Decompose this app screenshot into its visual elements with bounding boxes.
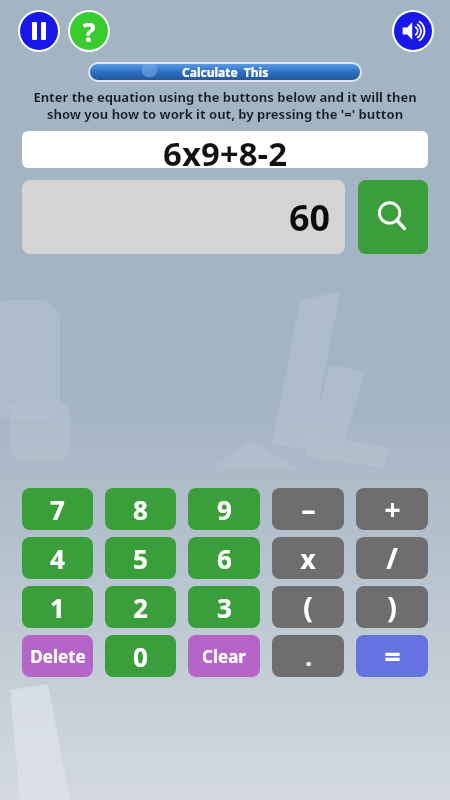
staticText: = (384, 637, 401, 675)
button[interactable]: 0 (105, 635, 176, 677)
button[interactable]: Sound (394, 12, 432, 50)
button[interactable]: 1 (22, 586, 93, 628)
staticText: + (384, 490, 401, 528)
button[interactable]: Delete (22, 635, 93, 677)
button[interactable]: ) (356, 586, 428, 628)
staticText: ) (387, 588, 397, 626)
button[interactable]: Show working (358, 180, 428, 254)
staticText: 7 (50, 492, 65, 527)
button[interactable]: Calculate This (90, 64, 360, 80)
button[interactable]: ( (272, 586, 344, 628)
button[interactable]: – (272, 488, 344, 530)
button[interactable]: 9 (188, 488, 260, 530)
staticText: / (386, 539, 398, 577)
staticText: 2 (133, 590, 148, 625)
staticText: 3 (217, 590, 232, 625)
button[interactable]: + (356, 488, 428, 530)
button[interactable]: 5 (105, 537, 176, 579)
staticText: . (305, 640, 312, 673)
button[interactable]: 3 (188, 586, 260, 628)
staticText: – (301, 490, 316, 528)
staticText: Clear (202, 645, 246, 668)
staticText: 60 (289, 193, 331, 242)
button[interactable]: 60 (22, 180, 345, 254)
staticText: 5 (133, 541, 148, 576)
button[interactable]: 6x9+8-2 (22, 131, 428, 168)
button[interactable]: 2 (105, 586, 176, 628)
button[interactable]: 7 (22, 488, 93, 530)
staticText: Enter the equation using the buttons bel… (10, 88, 440, 123)
button[interactable]: / (356, 537, 428, 579)
staticText: 6x9+8-2 (163, 131, 288, 168)
button[interactable]: = (356, 635, 428, 677)
staticText: Delete (30, 645, 86, 668)
staticText: ? (83, 14, 96, 49)
staticText: 8 (133, 492, 148, 527)
staticText: 6 (217, 541, 232, 576)
button[interactable]: 8 (105, 488, 176, 530)
staticText: 1 (50, 590, 65, 625)
button[interactable]: . (272, 635, 344, 677)
button[interactable]: 6 (188, 537, 260, 579)
button[interactable]: Clear (188, 635, 260, 677)
button[interactable]: x (272, 537, 344, 579)
button[interactable]: 4 (22, 537, 93, 579)
staticText: 9 (217, 492, 232, 527)
staticText: ( (303, 588, 313, 626)
button[interactable]: Help (70, 12, 108, 50)
staticText: x (300, 541, 316, 576)
staticText: Calculate This (182, 64, 269, 80)
staticText: 0 (133, 639, 148, 674)
button[interactable]: Pause (20, 12, 58, 50)
staticText: 4 (50, 541, 65, 576)
